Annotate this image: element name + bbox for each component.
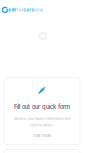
staticText: vehicle details. [29,123,54,127]
staticText: ash [8,7,16,13]
staticText: Start Now [33,133,51,138]
staticText: for [16,7,23,13]
staticText: now [33,7,43,13]
staticText: Fill out our quick form [14,103,70,110]
staticText: cars [23,7,33,13]
button[interactable]: Start Now [27,131,57,140]
staticText: Send us your basic information and [13,116,70,121]
